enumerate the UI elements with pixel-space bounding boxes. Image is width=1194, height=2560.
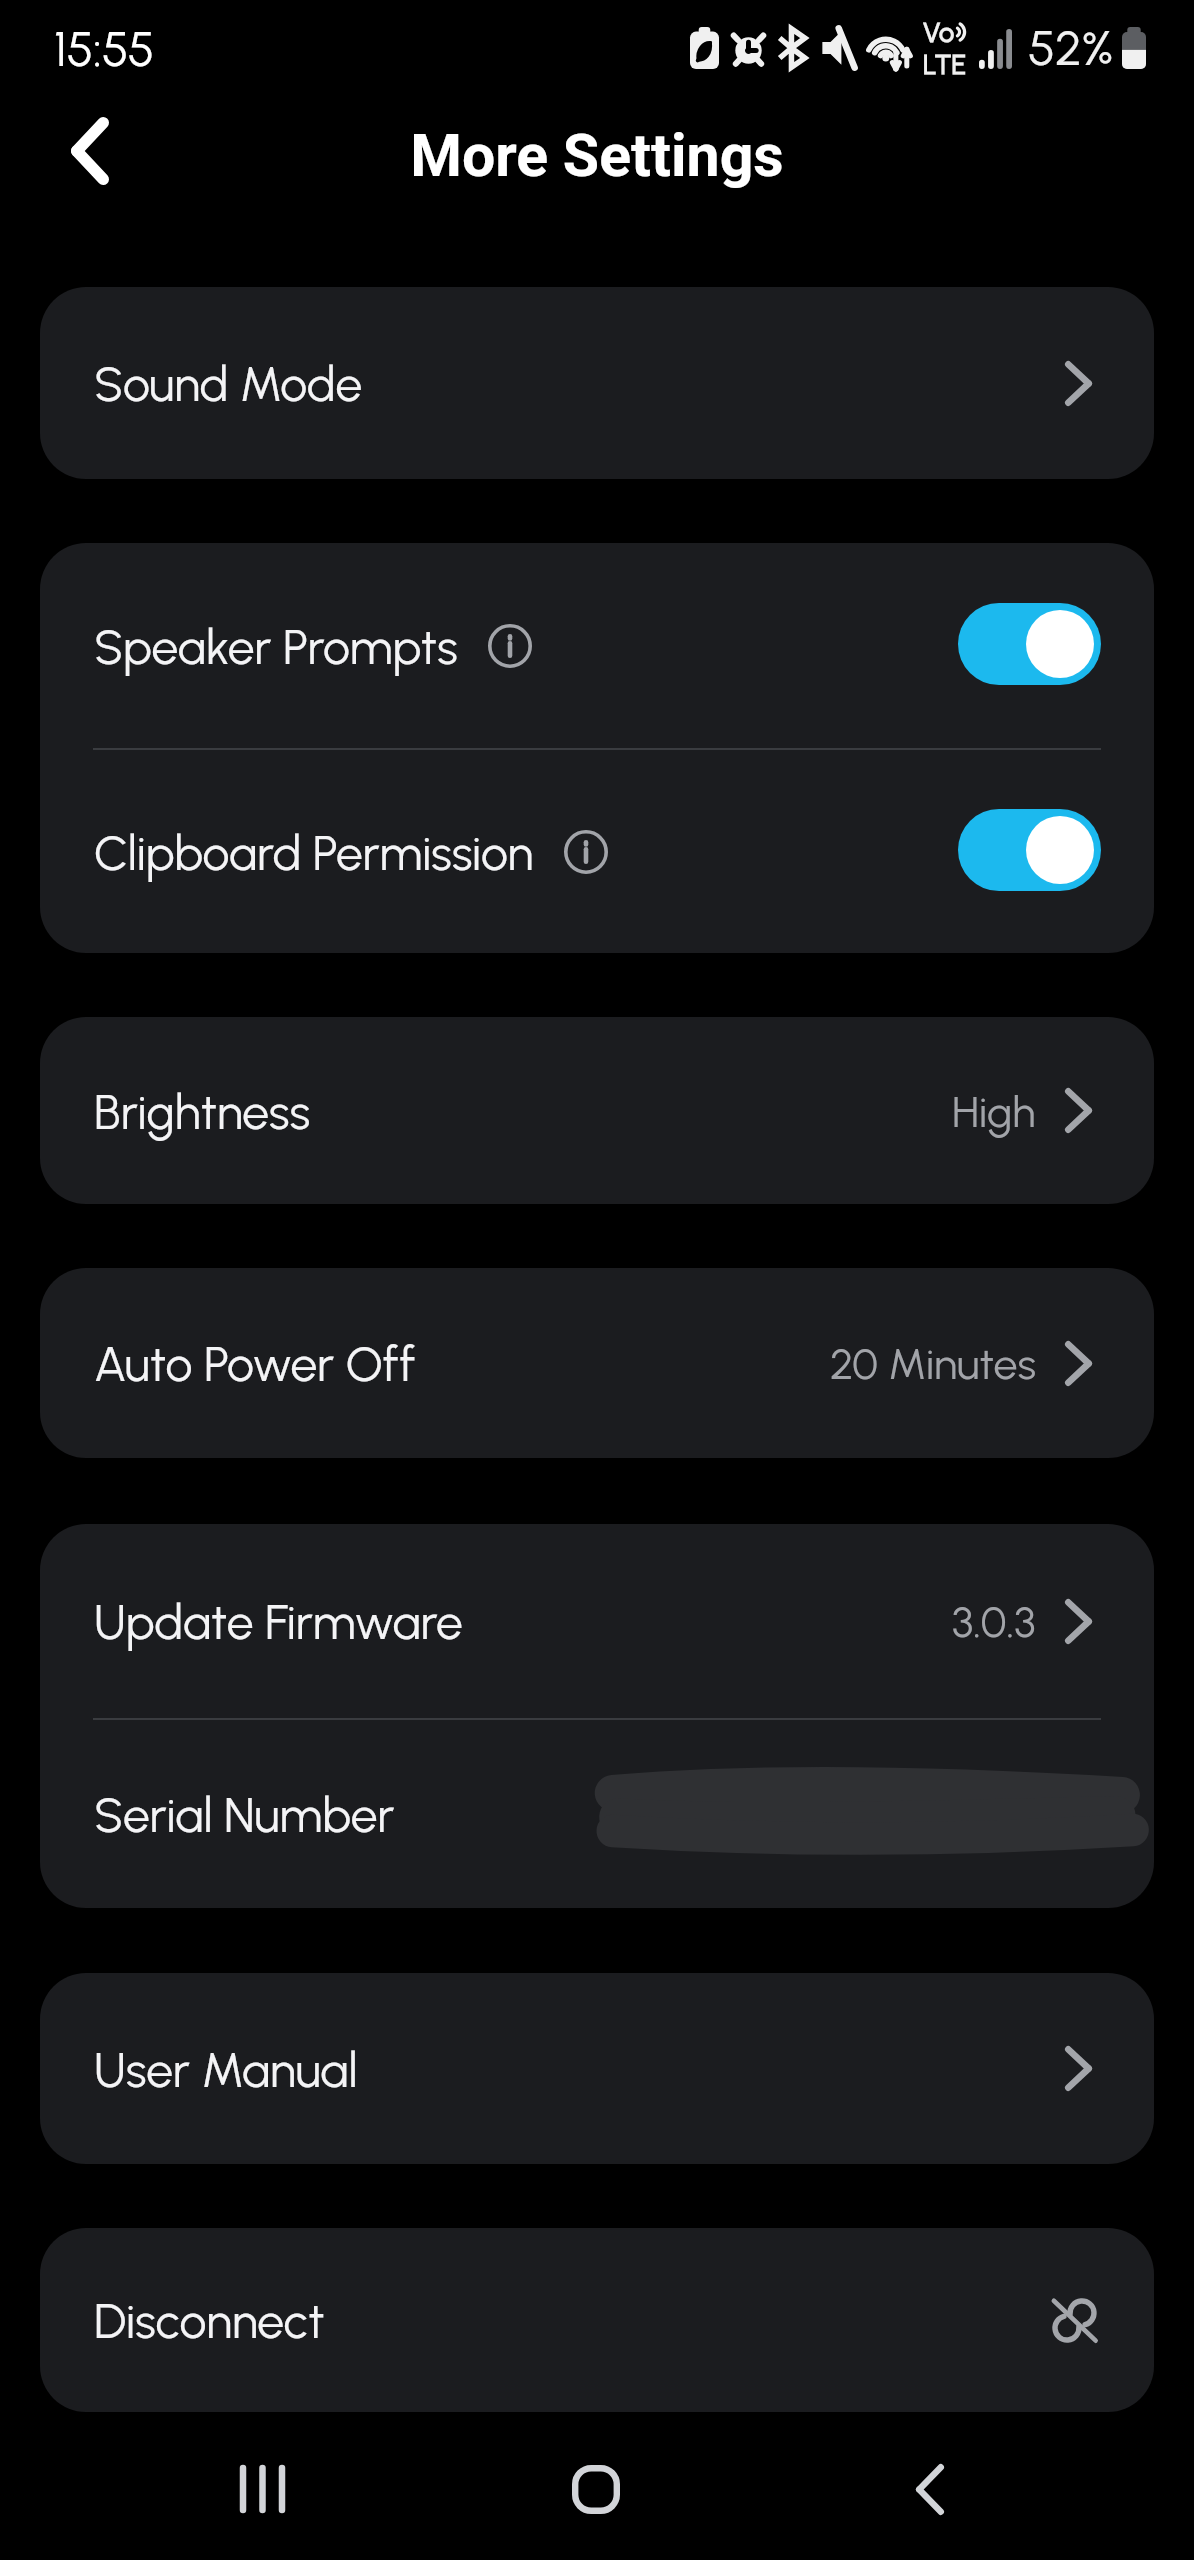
button[interactable]: Toggle [958, 809, 1101, 891]
button[interactable]: Home [541, 2434, 651, 2544]
staticText: Speaker Prompts [94, 618, 458, 676]
staticText: Disconnect [94, 2292, 325, 2350]
staticText: 15:55 [54, 20, 155, 78]
staticText: Update Firmware [94, 1593, 463, 1651]
staticText: Auto Power Off [94, 1335, 416, 1393]
button[interactable]: Serial Number [40, 1720, 1154, 1908]
button[interactable]: Disconnect [40, 2228, 1154, 2412]
button[interactable]: Recent apps [207, 2434, 317, 2544]
button[interactable]: Auto Power Off [40, 1268, 1154, 1458]
other: Disconnect [1051, 2297, 1098, 2344]
button[interactable]: Speaker Prompts [40, 543, 1154, 748]
button[interactable]: Sound Mode [40, 287, 1154, 479]
staticText: User Manual [94, 2041, 358, 2099]
button[interactable]: Back [39, 100, 141, 202]
staticText: 3.0.3 [952, 1596, 1036, 1648]
staticText: Brightness [94, 1083, 311, 1141]
staticText: Serial Number [94, 1786, 395, 1844]
staticText: High [952, 1086, 1036, 1138]
staticText: More Settings [410, 121, 784, 190]
button[interactable]: Brightness [40, 1017, 1154, 1204]
button[interactable]: Back [875, 2434, 985, 2544]
staticText: LTE [923, 48, 966, 80]
staticText: 52% [1028, 18, 1114, 77]
button[interactable]: Update Firmware [40, 1524, 1154, 1718]
staticText: Sound Mode [94, 355, 363, 413]
staticText: Clipboard Permission [94, 824, 534, 882]
button[interactable]: Toggle [958, 603, 1101, 685]
button[interactable]: Clipboard Permission [40, 750, 1154, 953]
staticText: 20 Minutes [830, 1338, 1036, 1390]
staticText: Vo [923, 16, 955, 48]
button[interactable]: User Manual [40, 1973, 1154, 2164]
